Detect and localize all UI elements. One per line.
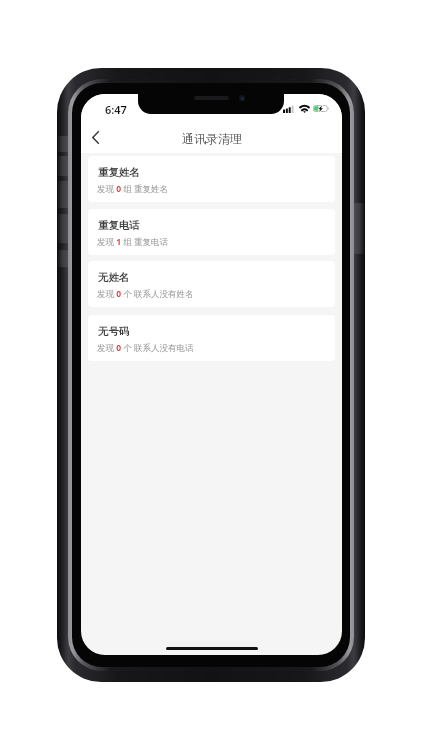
staticText: 6:47: [105, 102, 127, 117]
button[interactable]: 无姓名: [88, 261, 335, 307]
staticText: 发现 0 组 重复姓名: [97, 183, 168, 195]
staticText: 重复电话: [98, 219, 140, 232]
staticText: 重复姓名: [98, 166, 140, 179]
staticText: 发现 0 个 联系人没有姓名: [97, 288, 194, 300]
button[interactable]: 返回: [81, 123, 109, 151]
button[interactable]: 重复电话: [88, 209, 335, 255]
staticText: 无姓名: [98, 271, 130, 284]
staticText: 发现 0 个 联系人没有电话: [97, 342, 194, 354]
staticText: 发现 1 组 重复电话: [97, 236, 168, 248]
staticText: 无号码: [98, 325, 130, 338]
button[interactable]: 重复姓名: [88, 156, 335, 202]
staticText: 通讯录清理: [182, 131, 242, 146]
button[interactable]: 无号码: [88, 315, 335, 361]
